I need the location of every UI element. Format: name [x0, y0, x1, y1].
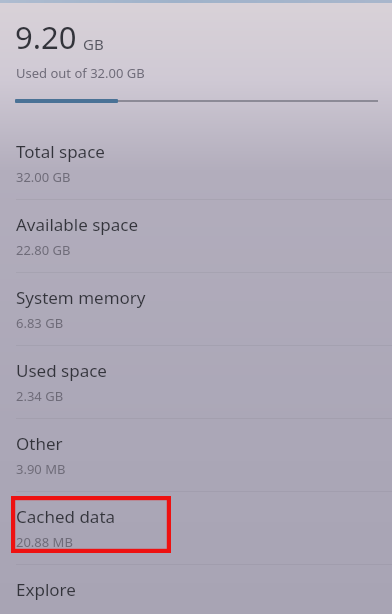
staticText: 6.83 GB	[16, 314, 64, 332]
button[interactable]: Cached data	[0, 492, 392, 564]
button[interactable]: Other	[0, 419, 392, 491]
staticText: Other	[16, 432, 63, 455]
staticText: Used space	[16, 359, 107, 382]
staticText: 32.00 GB	[16, 168, 71, 186]
staticText: System memory	[16, 286, 146, 309]
staticText: Cached data	[16, 505, 116, 528]
button[interactable]: Used space	[0, 346, 392, 418]
button[interactable]: Available space	[0, 200, 392, 272]
staticText: Available space	[16, 213, 139, 236]
button[interactable]: System memory	[0, 273, 392, 345]
staticText: 3.90 MB	[16, 460, 66, 478]
staticText: 22.80 GB	[16, 241, 71, 259]
button[interactable]: Explore	[0, 565, 392, 614]
staticText: 20.88 MB	[16, 533, 73, 551]
staticText: 2.34 GB	[16, 387, 64, 405]
staticText: Used out of 32.00 GB	[16, 64, 145, 82]
staticText: Total space	[16, 140, 105, 163]
staticText: GB	[83, 34, 104, 54]
staticText: Explore	[16, 578, 76, 601]
staticText: 9.20	[15, 16, 77, 58]
button[interactable]: Total space	[0, 127, 392, 199]
